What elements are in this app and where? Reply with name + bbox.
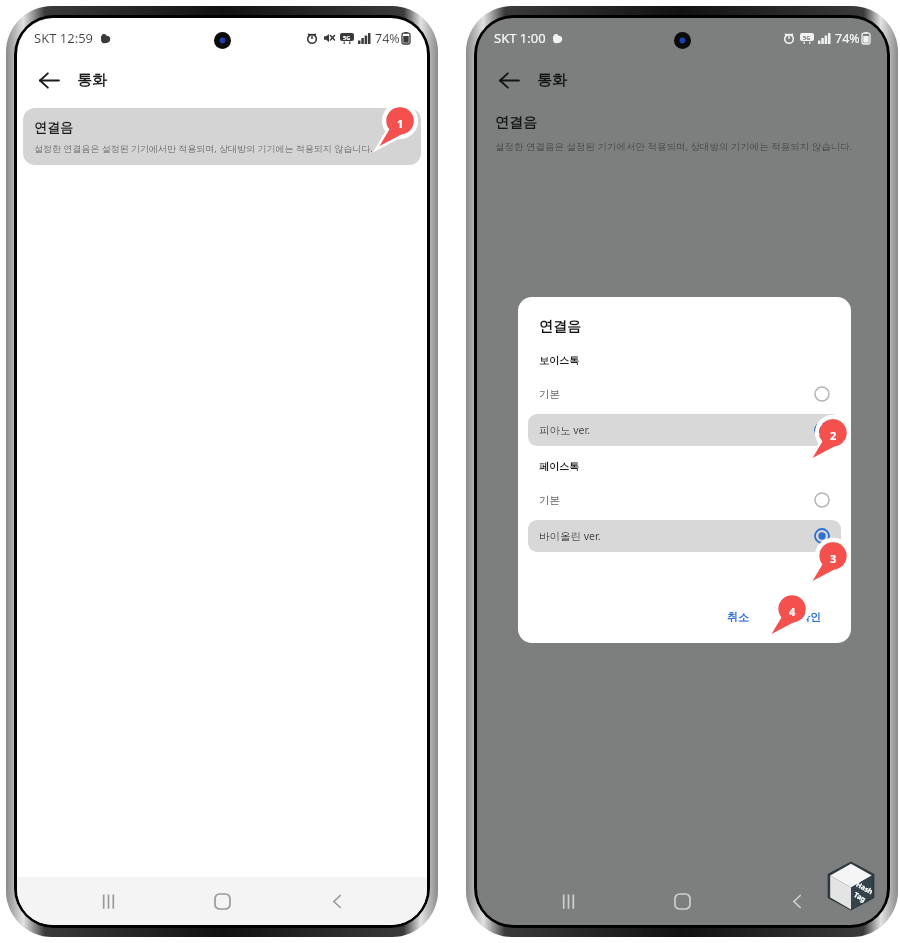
staticText: 74%	[835, 30, 860, 47]
staticText: 연결음	[34, 119, 73, 135]
button[interactable]: Back	[313, 877, 361, 925]
button[interactable]: 바이올린 ver.	[528, 520, 841, 552]
button[interactable]: Recents	[84, 877, 132, 925]
staticText: 보이스톡	[539, 354, 579, 367]
button[interactable]: Recents	[544, 877, 592, 925]
staticText: 기본	[539, 388, 560, 401]
button[interactable]: Home	[198, 877, 246, 925]
staticText: 취소	[727, 610, 749, 624]
staticText: 연결음	[495, 114, 537, 132]
staticText: 설정한 연결음은 설정된 기기에서만 적용되며, 상대방의 기기에는 적용되지 …	[34, 142, 373, 154]
staticText: 바이올린 ver.	[539, 529, 601, 543]
button[interactable]: Back	[29, 60, 69, 100]
staticText: 페이스톡	[539, 460, 579, 473]
staticText: Tag	[852, 890, 868, 905]
staticText: 5G	[343, 34, 351, 41]
button[interactable]: Back	[773, 877, 821, 925]
staticText: 74%	[375, 30, 400, 47]
staticText: 통화	[77, 71, 107, 90]
staticText: 4	[789, 604, 796, 619]
button[interactable]: Home	[658, 877, 706, 925]
staticText: 1	[397, 116, 404, 131]
staticText: 5G	[803, 34, 811, 41]
staticText: SKT 12:59	[34, 29, 94, 47]
staticText: SKT 1:00	[494, 29, 546, 47]
button[interactable]: 취소	[713, 602, 763, 632]
button[interactable]: 기본	[528, 484, 841, 516]
staticText: 2	[830, 428, 837, 443]
button[interactable]: Back	[489, 60, 529, 100]
button[interactable]: 확인	[785, 602, 835, 632]
button[interactable]: 기본	[528, 378, 841, 410]
button[interactable]: 연결음	[23, 108, 421, 165]
staticText: 연결음	[539, 318, 581, 336]
staticText: 피아노 ver.	[539, 423, 590, 437]
staticText: 통화	[537, 71, 567, 90]
button[interactable]: 피아노 ver.	[528, 414, 841, 446]
staticText: 기본	[539, 494, 560, 507]
staticText: 3	[830, 551, 837, 566]
staticText: 설정한 연결음은 설정된 기기에서만 적용되며, 상대방의 기기에는 적용되지 …	[495, 140, 853, 153]
staticText: Hash	[854, 880, 875, 897]
staticText: 확인	[799, 610, 821, 624]
